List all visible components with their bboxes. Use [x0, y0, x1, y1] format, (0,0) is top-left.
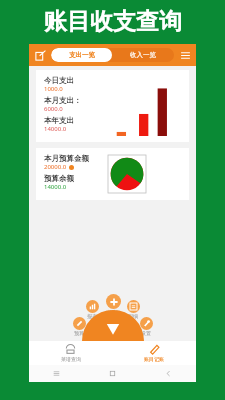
- button[interactable]: Menu: [174, 44, 196, 66]
- button[interactable]: 支出一览: [51, 48, 112, 62]
- button[interactable]: Home: [84, 365, 140, 382]
- staticText: 明细: [128, 313, 138, 319]
- staticText: 本月支出：: [44, 96, 82, 105]
- staticText: 预算: [74, 330, 84, 336]
- button[interactable]: Recents: [29, 365, 84, 382]
- button[interactable]: Back: [140, 365, 196, 382]
- staticText: 添加: [108, 309, 118, 315]
- staticText: 菜谱查询: [61, 356, 81, 362]
- staticText: 20000.0: [44, 163, 67, 171]
- staticText: 14000.0: [44, 125, 67, 133]
- button[interactable]: Collapse menu: [82, 310, 144, 341]
- staticText: 支出一览: [69, 51, 95, 59]
- staticText: 收入一览: [130, 51, 156, 59]
- button[interactable]: 收入一览: [112, 48, 174, 62]
- staticText: 1000.0: [44, 85, 63, 93]
- button[interactable]: 账目记账: [112, 341, 196, 365]
- button[interactable]: 设置: [135, 317, 157, 336]
- button[interactable]: 添加: [102, 294, 124, 315]
- staticText: 本月预算金额: [44, 154, 89, 163]
- staticText: 6000.0: [44, 105, 63, 113]
- button[interactable]: 预算: [68, 317, 90, 336]
- staticText: 账目记账: [144, 356, 164, 362]
- button[interactable]: 菜谱查询: [29, 341, 112, 365]
- staticText: 本年支出: [44, 116, 74, 125]
- staticText: 14000.0: [44, 183, 67, 191]
- staticText: 预算余额: [44, 174, 74, 183]
- staticText: 报表: [87, 313, 97, 319]
- button[interactable]: 明细: [122, 300, 144, 319]
- button[interactable]: Share: [29, 44, 51, 66]
- button[interactable]: 报表: [81, 300, 103, 319]
- staticText: 账目收支查询: [44, 7, 182, 36]
- staticText: 设置: [141, 330, 151, 336]
- staticText: 今日支出: [44, 76, 74, 85]
